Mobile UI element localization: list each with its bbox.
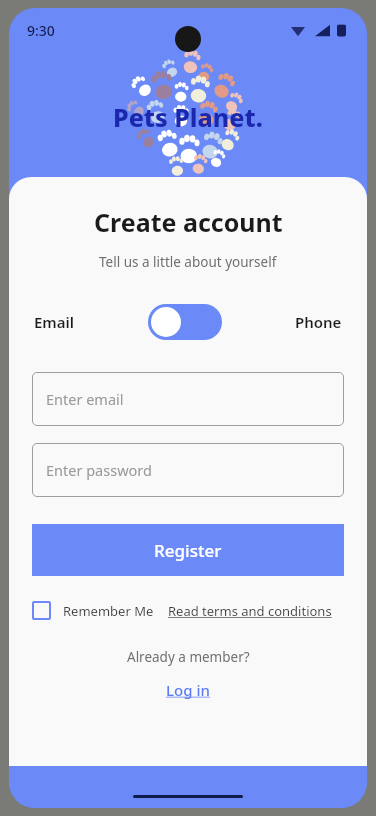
button[interactable]: Enter password [32, 443, 344, 497]
button[interactable]: Read terms and conditions [168, 602, 332, 620]
staticText: Tell us a little about yourself [99, 253, 277, 271]
staticText: Read terms and conditions [168, 602, 332, 620]
staticText: Pets Planet. [113, 100, 263, 134]
staticText: Remember Me [63, 602, 154, 620]
button[interactable]: Log in [162, 680, 214, 700]
staticText: Register [154, 539, 222, 562]
button[interactable]: Enter email [32, 372, 344, 426]
staticText: 9:30 [27, 21, 55, 40]
button[interactable]: Remember Me [32, 601, 154, 620]
staticText: Phone [295, 312, 342, 332]
staticText: Enter password [46, 460, 152, 480]
staticText: Email [34, 312, 75, 332]
button[interactable]: Phone [293, 306, 344, 338]
staticText: Enter email [46, 389, 124, 409]
staticText: Log in [166, 680, 210, 700]
button[interactable]: Email [32, 306, 77, 338]
button[interactable]: Register [32, 524, 344, 576]
button[interactable]: Toggle between email and phone [148, 304, 222, 340]
staticText: Create account [94, 205, 283, 239]
staticText: Already a member? [127, 648, 250, 666]
